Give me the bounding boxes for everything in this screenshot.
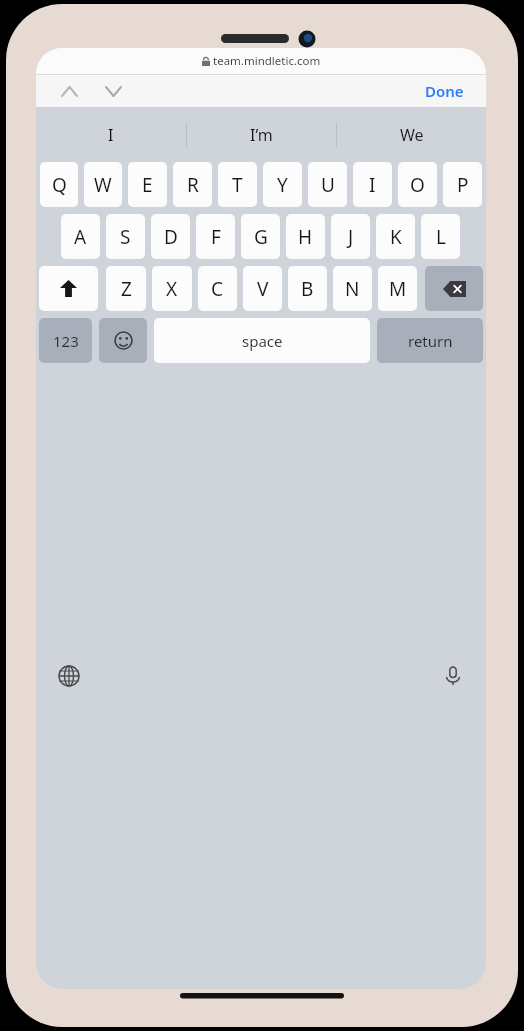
staticText: D xyxy=(164,224,178,250)
staticText: I xyxy=(108,124,114,146)
staticText: E xyxy=(142,172,153,198)
staticText: We xyxy=(400,124,424,146)
button[interactable]: K xyxy=(376,214,415,259)
button[interactable]: T xyxy=(218,162,257,207)
button[interactable]: I’m xyxy=(187,108,336,162)
staticText: Z xyxy=(121,276,132,302)
button[interactable]: H xyxy=(286,214,325,259)
staticText: W xyxy=(94,172,112,198)
button[interactable]: R xyxy=(173,162,212,207)
staticText: U xyxy=(321,172,335,198)
button[interactable]: space xyxy=(154,318,370,363)
staticText: Q xyxy=(52,172,67,198)
button[interactable]: Z xyxy=(106,266,146,311)
button[interactable]: Done xyxy=(421,77,468,105)
button[interactable]: L xyxy=(421,214,460,259)
button[interactable]: G xyxy=(241,214,280,259)
staticText: T xyxy=(232,172,243,198)
button[interactable]: Backspace xyxy=(425,266,483,311)
button[interactable]: We xyxy=(337,108,486,162)
staticText: Done xyxy=(425,81,464,101)
button[interactable]: M xyxy=(378,266,417,311)
button[interactable]: Previous field xyxy=(54,76,84,106)
button[interactable]: return xyxy=(377,318,483,363)
staticText: N xyxy=(345,276,360,302)
button[interactable]: V xyxy=(243,266,282,311)
staticText: I xyxy=(369,172,376,198)
staticText: R xyxy=(187,172,199,198)
button[interactable]: N xyxy=(333,266,372,311)
staticText: space xyxy=(242,331,283,351)
staticText: I’m xyxy=(250,124,273,146)
staticText: F xyxy=(211,224,221,250)
button[interactable]: P xyxy=(443,162,482,207)
staticText: L xyxy=(436,224,446,250)
staticText: V xyxy=(257,276,269,302)
staticText: X xyxy=(166,276,178,302)
staticText: C xyxy=(211,276,224,302)
button[interactable]: D xyxy=(151,214,190,259)
button[interactable]: Q xyxy=(40,162,78,207)
staticText: return xyxy=(408,331,453,351)
staticText: team.mindletic.com xyxy=(213,53,321,69)
button[interactable]: F xyxy=(196,214,235,259)
button[interactable]: Y xyxy=(263,162,302,207)
staticText: J xyxy=(348,224,354,250)
button[interactable]: O xyxy=(398,162,437,207)
button[interactable]: 123 xyxy=(39,318,92,363)
staticText: K xyxy=(390,224,402,250)
button[interactable]: E xyxy=(128,162,167,207)
button[interactable]: B xyxy=(288,266,327,311)
staticText: O xyxy=(410,172,425,198)
button[interactable]: Shift xyxy=(39,266,98,311)
button[interactable]: I xyxy=(353,162,392,207)
button[interactable]: I xyxy=(36,108,186,162)
staticText: Y xyxy=(277,172,288,198)
staticText: A xyxy=(74,224,87,250)
button[interactable]: U xyxy=(308,162,347,207)
staticText: 123 xyxy=(53,331,79,351)
staticText: H xyxy=(298,224,313,250)
button[interactable]: Emoji xyxy=(99,318,147,363)
button[interactable]: A xyxy=(61,214,100,259)
button[interactable]: W xyxy=(84,162,122,207)
staticText: P xyxy=(457,172,469,198)
staticText: G xyxy=(254,224,268,250)
button[interactable]: J xyxy=(331,214,370,259)
button[interactable]: S xyxy=(106,214,145,259)
button[interactable]: C xyxy=(198,266,237,311)
staticText: S xyxy=(120,224,131,250)
button[interactable]: Dictation xyxy=(436,659,470,693)
staticText: M xyxy=(389,276,407,302)
button[interactable]: Next field xyxy=(98,76,128,106)
staticText: B xyxy=(301,276,314,302)
button[interactable]: Change keyboard xyxy=(52,659,86,693)
button[interactable]: X xyxy=(152,266,192,311)
